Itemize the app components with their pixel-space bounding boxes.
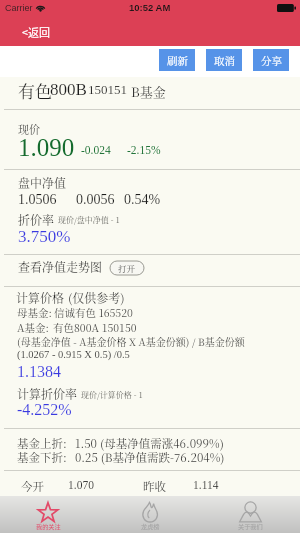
staticText: 打开 bbox=[118, 262, 136, 274]
staticText: (1.0267 - 0.915 X 0.5) /0.5 bbox=[17, 349, 130, 361]
staticText: 现价/盘中净值 - 1 bbox=[58, 214, 120, 225]
staticText: 今开 bbox=[21, 478, 44, 495]
button[interactable]: 关于我们 bbox=[217, 496, 283, 533]
staticText: 1.50 (母基净值需涨46.099%) bbox=[75, 435, 224, 452]
staticText: 取消 bbox=[214, 53, 235, 68]
staticText: 计算价格 bbox=[16, 289, 65, 306]
staticText: -0.024 bbox=[81, 144, 111, 157]
staticText: 1.090 bbox=[18, 134, 75, 162]
staticText: 3.750% bbox=[18, 227, 71, 246]
staticText: 昨收 bbox=[143, 478, 166, 495]
button[interactable]: 我的关注 bbox=[15, 496, 81, 533]
staticText: 有色 bbox=[18, 78, 52, 102]
staticText: 查看净值走势图 bbox=[18, 258, 103, 275]
staticText: 关于我们 bbox=[238, 522, 263, 531]
staticText: 0.0056 bbox=[76, 192, 115, 208]
staticText: -2.15% bbox=[127, 144, 161, 157]
staticText: Carrier bbox=[5, 3, 33, 13]
staticText: 盘中净值 bbox=[18, 174, 67, 191]
staticText: 0.54% bbox=[124, 192, 161, 208]
staticText: 刷新 bbox=[167, 53, 188, 68]
other: 关于我们 bbox=[239, 502, 262, 522]
staticText: 1.1384 bbox=[17, 363, 61, 381]
staticText: A基金: bbox=[17, 320, 49, 335]
staticText: 我的关注 bbox=[36, 522, 61, 531]
staticText: B基金 bbox=[131, 82, 166, 101]
staticText: 龙虎榜 bbox=[141, 522, 160, 531]
button[interactable]: 龙虎榜 bbox=[117, 496, 183, 533]
staticText: 基金上折: bbox=[17, 435, 67, 452]
staticText: 现价 bbox=[18, 121, 40, 137]
staticText: 母基金: bbox=[17, 305, 52, 320]
staticText: <返回 bbox=[22, 24, 51, 40]
staticText: 计算折价率 bbox=[17, 385, 78, 402]
staticText: 基金下折: bbox=[17, 449, 67, 466]
staticText: 1.0506 bbox=[18, 192, 57, 208]
other: 龙虎榜 bbox=[141, 502, 159, 522]
staticText: 10:52 AM bbox=[129, 2, 171, 13]
button[interactable]: 打开 bbox=[110, 261, 144, 275]
staticText: 分享 bbox=[261, 53, 282, 68]
staticText: -4.252% bbox=[17, 401, 72, 419]
staticText: 800B bbox=[50, 80, 87, 99]
staticText: (母基金净值 - A基金价格 X A基金份额) / B基金份额 bbox=[17, 334, 245, 348]
staticText: 0.25 (B基净值需跌-76.204%) bbox=[75, 449, 225, 466]
staticText: 信诚有色 165520 bbox=[54, 305, 133, 320]
button[interactable]: 刷新 bbox=[159, 49, 195, 71]
staticText: 1.114 bbox=[193, 479, 219, 492]
staticText: 1.070 bbox=[68, 479, 94, 492]
staticText: 150151 bbox=[88, 82, 127, 96]
staticText: 现价/计算价格 - 1 bbox=[81, 389, 143, 400]
button[interactable]: 取消 bbox=[206, 49, 242, 71]
staticText: 折价率 bbox=[18, 211, 55, 228]
staticText: (仅供参考) bbox=[68, 289, 125, 306]
staticText: 有色800A 150150 bbox=[53, 320, 137, 335]
button[interactable]: <返回 bbox=[14, 22, 43, 40]
button[interactable]: 分享 bbox=[253, 49, 289, 71]
other: 我的关注 bbox=[37, 502, 59, 524]
